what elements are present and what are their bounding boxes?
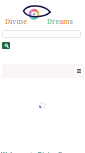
staticText: Divine [5, 17, 27, 27]
staticText: Welcome to Divine Dreams - dream [1, 150, 85, 153]
button[interactable]: Search [2, 42, 10, 49]
button[interactable]: Menu [74, 66, 83, 75]
staticText: Dreams [47, 17, 73, 27]
button[interactable] [2, 30, 81, 38]
